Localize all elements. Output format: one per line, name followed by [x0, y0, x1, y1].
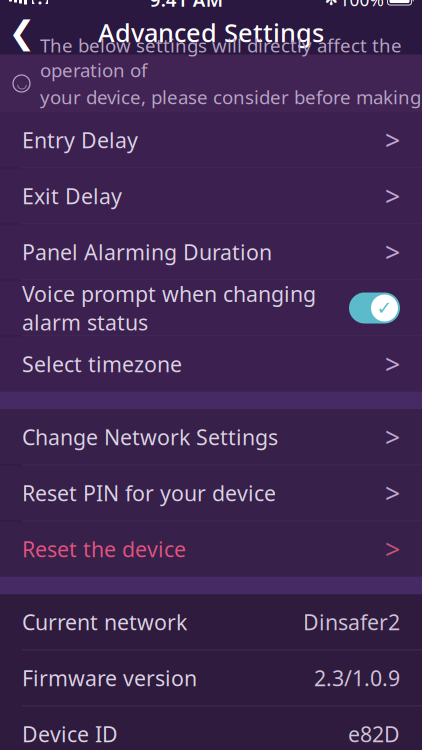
staticText: ❮ [8, 14, 35, 51]
staticText: Voice prompt when changing alarm status [22, 280, 316, 336]
staticText: 2.3/1.0.9 [314, 664, 400, 692]
button[interactable]: Reset PIN for your device [0, 465, 422, 520]
staticText: Current network [22, 608, 187, 636]
staticText: Firmware version [22, 664, 197, 692]
staticText: Reset PIN for your device [22, 479, 276, 507]
staticText: Select timezone [22, 350, 182, 378]
staticText: > [385, 346, 400, 382]
staticText: Reset the device [22, 535, 186, 563]
staticText: > [385, 475, 400, 511]
staticText: 100% [339, 0, 383, 11]
button[interactable]: Back [0, 10, 44, 54]
staticText: > [385, 178, 400, 214]
button[interactable]: Select timezone [0, 336, 422, 391]
staticText: Device ID [22, 720, 118, 748]
staticText: ◡ [16, 77, 26, 90]
button[interactable]: Reset the device [0, 521, 422, 576]
staticText: > [385, 531, 400, 567]
staticText: Panel Alarming Duration [22, 238, 272, 266]
staticText: > [385, 234, 400, 270]
staticText: The below settings will directly affect … [40, 33, 402, 82]
staticText: Change Network Settings [22, 423, 278, 451]
staticText: > [385, 419, 400, 455]
button[interactable]: Panel Alarming Duration [0, 224, 422, 279]
staticText: ✻ [324, 0, 337, 9]
button[interactable]: Entry Delay [0, 112, 422, 167]
staticText: e82D [348, 720, 400, 748]
staticText: Exit Delay [22, 182, 122, 210]
button[interactable]: Voice prompt when changing alarm status [349, 292, 400, 323]
staticText: ✓ [376, 297, 392, 319]
staticText: > [385, 122, 400, 158]
staticText: Advanced Settings [98, 16, 324, 49]
button[interactable]: Exit Delay [0, 168, 422, 223]
button[interactable]: Change Network Settings [0, 409, 422, 464]
staticText: 9:41 AM [150, 0, 223, 12]
staticText: Dinsafer2 [303, 608, 400, 636]
staticText: Entry Delay [22, 126, 138, 154]
staticText: your device, please consider before maki… [40, 84, 421, 134]
